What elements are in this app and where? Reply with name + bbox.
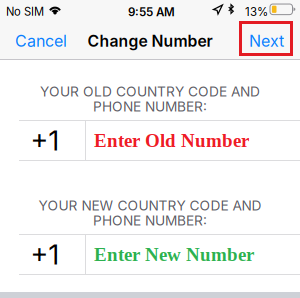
- staticText: +1: [30, 124, 59, 157]
- staticText: 13%: [245, 5, 268, 19]
- staticText: +1: [30, 238, 59, 271]
- button[interactable]: Cancel: [5, 24, 77, 58]
- staticText: Enter New Number: [94, 244, 254, 265]
- staticText: YOUR NEW COUNTRY CODE AND: [38, 197, 261, 214]
- staticText: No SIM: [6, 5, 44, 19]
- button[interactable]: Enter New Number: [86, 234, 300, 275]
- staticText: PHONE NUMBER:: [93, 98, 207, 115]
- button[interactable]: Next: [239, 24, 294, 58]
- staticText: 9:55 AM: [128, 5, 175, 19]
- staticText: Next: [249, 31, 284, 51]
- staticText: PHONE NUMBER:: [93, 212, 207, 229]
- button[interactable]: Enter Old Number: [86, 120, 300, 161]
- staticText: Cancel: [15, 31, 67, 51]
- staticText: YOUR OLD COUNTRY CODE AND: [40, 83, 260, 100]
- staticText: Enter Old Number: [94, 130, 249, 151]
- staticText: Change Number: [87, 31, 212, 50]
